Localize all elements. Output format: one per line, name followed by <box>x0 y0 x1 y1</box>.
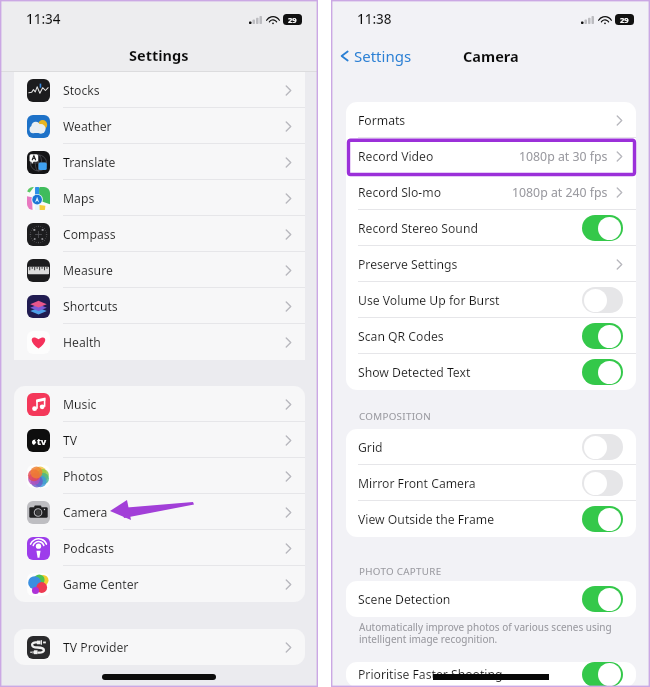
button[interactable]: Measure <box>14 252 305 288</box>
staticText: Settings <box>354 46 412 66</box>
staticText: Prioritise Faster Shooting <box>358 666 503 683</box>
staticText: Automatically improve photos of various … <box>359 620 612 646</box>
button[interactable]: Photos <box>14 458 305 494</box>
button[interactable]: Scan QR Codes <box>346 318 636 354</box>
staticText: Photos <box>63 468 103 485</box>
staticText: Use Volume Up for Burst <box>358 292 500 309</box>
button[interactable]: Switch on <box>582 323 623 349</box>
staticText: 11:38 <box>357 10 392 28</box>
button[interactable]: Shortcuts <box>14 288 305 324</box>
staticText: 29 <box>288 15 297 25</box>
staticText: Translate <box>63 154 116 171</box>
staticText: Scene Detection <box>358 591 451 608</box>
staticText: Game Center <box>63 576 139 593</box>
button[interactable]: Formats <box>346 102 636 138</box>
button[interactable]: Record Slo-mo <box>346 174 636 210</box>
staticText: Weather <box>63 118 112 135</box>
button[interactable]: Preserve Settings <box>346 246 636 282</box>
staticText: Mirror Front Camera <box>358 475 476 492</box>
staticText: Compass <box>63 226 116 243</box>
button[interactable]: Switch off <box>582 287 623 313</box>
button[interactable]: View Outside the Frame <box>346 501 636 537</box>
staticText: Music <box>63 396 97 413</box>
staticText: TV <box>63 432 78 449</box>
staticText: tv <box>37 435 47 447</box>
staticText: Podcasts <box>63 540 115 557</box>
staticText: View Outside the Frame <box>358 511 494 528</box>
staticText: Preserve Settings <box>358 256 458 273</box>
staticText: Record Slo-mo <box>358 184 442 201</box>
button[interactable]: Prioritise Faster Shooting <box>346 662 636 687</box>
staticText: Grid <box>358 439 383 456</box>
staticText: Measure <box>63 262 113 279</box>
button[interactable]: Maps <box>14 180 305 216</box>
button[interactable]: Podcasts <box>14 530 305 566</box>
button[interactable]: Compass <box>14 216 305 252</box>
button[interactable]: Use Volume Up for Burst <box>346 282 636 318</box>
button[interactable]: Switch off <box>582 434 623 460</box>
staticText: Show Detected Text <box>358 364 471 381</box>
button[interactable]: tv <box>14 422 305 458</box>
button[interactable]: Switch off <box>582 470 623 496</box>
button[interactable]: Translate <box>14 144 305 180</box>
staticText: Shortcuts <box>63 298 118 315</box>
button[interactable]: Music <box>14 386 305 422</box>
staticText: Settings <box>129 45 189 65</box>
button[interactable]: Record Stereo Sound <box>346 210 636 246</box>
staticText: TV Provider <box>63 639 129 656</box>
staticText: Record Stereo Sound <box>358 220 478 237</box>
button[interactable]: Game Center <box>14 566 305 602</box>
button[interactable]: Camera <box>14 494 305 530</box>
staticText: Camera <box>63 504 108 521</box>
button[interactable]: Switch on <box>582 506 623 532</box>
staticText: Stocks <box>63 82 100 99</box>
staticText: 11:34 <box>26 10 61 28</box>
staticText: COMPOSITION <box>359 410 431 423</box>
button[interactable]: Back to Settings <box>331 38 420 74</box>
staticText: Record Video <box>358 148 434 165</box>
staticText: Camera <box>463 46 519 66</box>
staticText: Maps <box>63 190 95 207</box>
staticText: Scan QR Codes <box>358 328 444 345</box>
button[interactable]: Health <box>14 324 305 360</box>
button[interactable]: Scene Detection <box>346 581 636 617</box>
button[interactable]: Stocks <box>14 72 305 108</box>
button[interactable]: Show Detected Text <box>346 354 636 390</box>
button[interactable]: Weather <box>14 108 305 144</box>
staticText: PHOTO CAPTURE <box>359 565 442 578</box>
button[interactable]: Switch on <box>582 586 623 612</box>
staticText: 1080p at 30 fps <box>519 148 608 165</box>
button[interactable]: Mirror Front Camera <box>346 465 636 501</box>
button[interactable]: Record Video <box>346 138 636 174</box>
button[interactable]: Switch on <box>582 662 623 687</box>
staticText: 1080p at 240 fps <box>512 184 608 201</box>
staticText: 29 <box>620 15 629 25</box>
button[interactable]: TV Provider <box>14 629 305 665</box>
staticText: Health <box>63 334 101 351</box>
button[interactable]: Grid <box>346 429 636 465</box>
button[interactable]: Switch on <box>582 215 623 241</box>
staticText: Formats <box>358 112 406 129</box>
button[interactable]: Switch on <box>582 359 623 385</box>
